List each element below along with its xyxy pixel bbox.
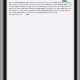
button[interactable]	[62, 0, 67, 2]
